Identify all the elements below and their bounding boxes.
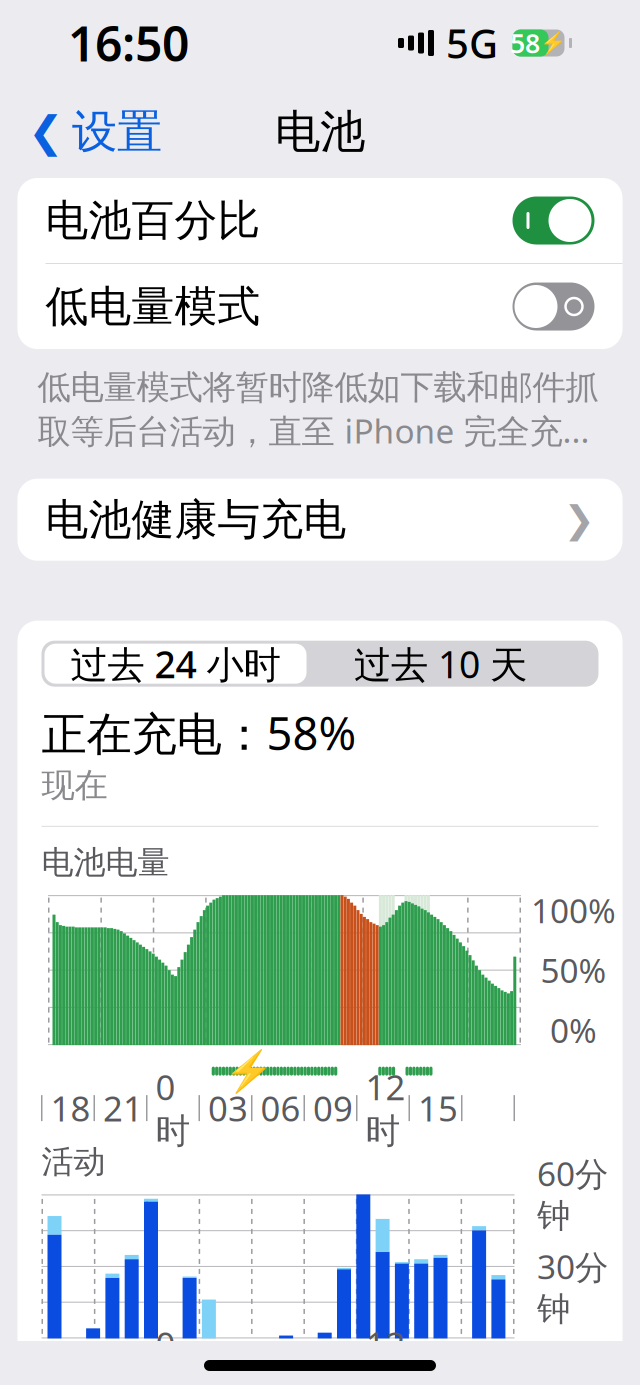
staticText: 电池百分比 (45, 194, 260, 247)
staticText: 12时 (365, 1064, 405, 1152)
staticText: 设置 (72, 104, 162, 160)
staticText: 0% (550, 1008, 597, 1052)
staticText: ⚡ (223, 1048, 273, 1094)
staticText: ❮ (28, 108, 64, 156)
staticText: 30分钟 (537, 1244, 608, 1329)
staticText: 过去 10 天 (354, 639, 527, 688)
staticText: 09 (313, 1342, 353, 1385)
staticText: 电池电量 (41, 843, 169, 882)
staticText: 06 (260, 1085, 300, 1131)
staticText: 正在充电：58% (41, 703, 356, 763)
button[interactable]: ❮ (8, 96, 182, 168)
staticText: 21 (103, 1085, 143, 1131)
staticText: ⚡ (540, 31, 567, 55)
staticText: 03 (208, 1342, 248, 1385)
staticText: 0时 (155, 1321, 190, 1385)
staticText: 现在 (41, 765, 107, 806)
staticText: 12时 (365, 1321, 405, 1385)
button[interactable]: 过去 10 天 (309, 641, 571, 687)
button[interactable]: 电池百分比 (17, 178, 622, 263)
staticText: 100% (531, 888, 616, 932)
staticText: 15 (418, 1085, 458, 1131)
staticText: 50% (540, 948, 606, 992)
staticText: ❯ (563, 498, 594, 541)
staticText: 60分钟 (537, 1151, 608, 1236)
staticText: 5G (446, 16, 498, 69)
staticText: 16:50 (68, 11, 189, 75)
staticText: 09 (313, 1085, 353, 1131)
staticText: 活动 (41, 1142, 105, 1181)
staticText: 0时 (155, 1064, 190, 1152)
staticText: 0分钟 (530, 1337, 615, 1382)
staticText: 电池健康与充电 (45, 493, 346, 546)
button[interactable]: 过去 24 小时 (41, 641, 309, 687)
staticText: 电池 (275, 104, 365, 160)
button[interactable]: 电池健康与充电 (0, 479, 640, 561)
staticText: 低电量模式 (45, 280, 260, 333)
staticText: 18 (50, 1085, 90, 1131)
staticText: 06 (260, 1342, 300, 1385)
staticText: 58 (510, 25, 540, 61)
staticText: 15 (418, 1342, 458, 1385)
button[interactable]: 低电量模式 (17, 264, 622, 349)
staticText: 过去 24 小时 (70, 639, 280, 688)
staticText: 03 (208, 1085, 248, 1131)
staticText: 低电量模式将暂时降低如下载和邮件抓取等后台活动，直至 iPhone 完全充电。 (37, 367, 602, 453)
